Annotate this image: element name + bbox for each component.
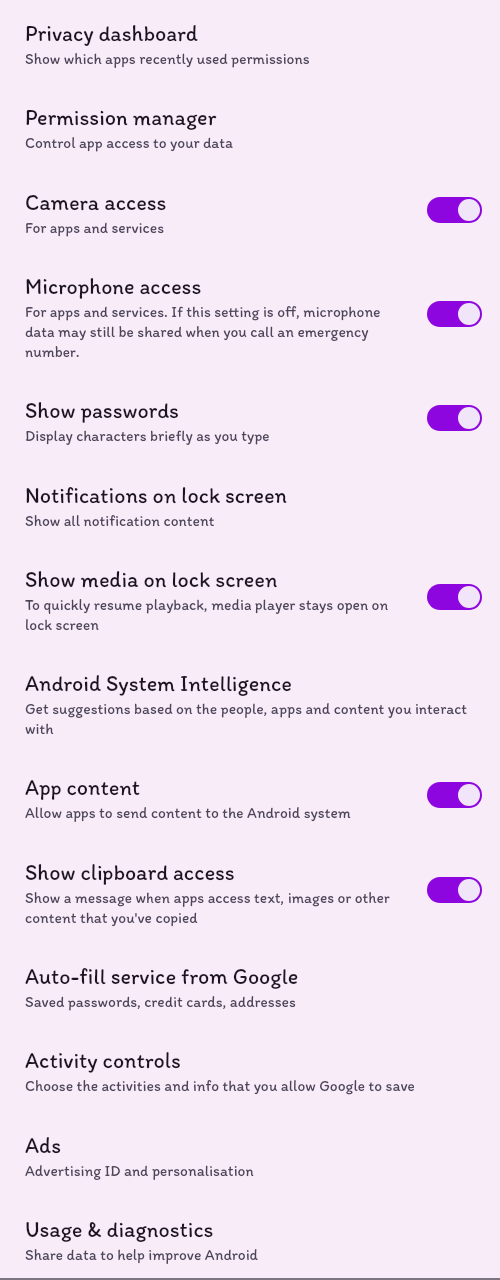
button[interactable]: Show media on lock screen (0, 566, 500, 634)
staticText: Get suggestions based on the people, app… (25, 698, 472, 738)
button[interactable]: Camera access (0, 189, 500, 237)
staticText: Display characters briefly as you type (25, 425, 270, 445)
button[interactable]: Show clipboard access (427, 877, 482, 903)
button[interactable]: Privacy dashboard (0, 20, 500, 68)
staticText: Show which apps recently used permission… (25, 48, 310, 68)
staticText: Microphone access (25, 273, 202, 299)
staticText: Android System Intelligence (25, 670, 292, 696)
staticText: Show media on lock screen (25, 566, 278, 592)
staticText: Auto-fill service from Google (25, 963, 299, 989)
staticText: Show a message when apps access text, im… (25, 887, 397, 927)
staticText: Saved passwords, credit cards, addresses (25, 991, 296, 1011)
button[interactable]: Permission manager (0, 104, 500, 152)
button[interactable]: Show clipboard access (0, 859, 500, 927)
staticText: Control app access to your data (25, 132, 234, 152)
button[interactable]: Camera access (427, 197, 482, 223)
staticText: Permission manager (25, 104, 217, 130)
button[interactable]: App content (0, 774, 500, 822)
button[interactable]: App content (427, 782, 482, 808)
staticText: Choose the activities and info that you … (25, 1075, 415, 1095)
staticText: Usage & diagnostics (25, 1216, 214, 1242)
staticText: Allow apps to send content to the Androi… (25, 802, 351, 822)
button[interactable]: Microphone access (0, 273, 500, 361)
button[interactable]: Notifications on lock screen (0, 482, 500, 530)
staticText: App content (25, 774, 140, 800)
staticText: Privacy dashboard (25, 20, 198, 46)
button[interactable]: Usage & diagnostics (0, 1216, 500, 1264)
button[interactable]: Show passwords (427, 405, 482, 431)
staticText: Advertising ID and personalisation (25, 1160, 254, 1180)
button[interactable]: Show passwords (0, 397, 500, 445)
staticText: Ads (25, 1132, 62, 1158)
staticText: Activity controls (25, 1047, 181, 1073)
button[interactable]: Ads (0, 1132, 500, 1180)
button[interactable]: Microphone access (427, 301, 482, 327)
staticText: Notifications on lock screen (25, 482, 287, 508)
staticText: Show passwords (25, 397, 180, 423)
staticText: For apps and services (25, 217, 165, 237)
staticText: Camera access (25, 189, 167, 215)
button[interactable]: Auto-fill service from Google (0, 963, 500, 1011)
button[interactable]: Show media on lock screen (427, 584, 482, 610)
button[interactable]: Android System Intelligence (0, 670, 500, 738)
staticText: Show clipboard access (25, 859, 235, 885)
staticText: Share data to help improve Android (25, 1244, 259, 1264)
button[interactable]: Activity controls (0, 1047, 500, 1095)
staticText: For apps and services. If this setting i… (25, 301, 397, 361)
staticText: Show all notification content (25, 510, 215, 530)
staticText: To quickly resume playback, media player… (25, 594, 397, 634)
